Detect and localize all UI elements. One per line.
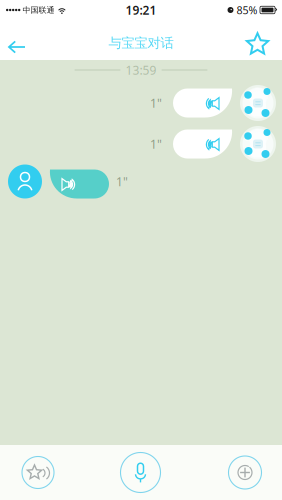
staticText: 13:59 xyxy=(125,62,156,78)
staticText: 1" xyxy=(150,136,162,152)
staticText: 1" xyxy=(116,174,128,189)
button[interactable]: More xyxy=(203,445,282,500)
staticText: 1" xyxy=(150,95,162,111)
button[interactable]: Back xyxy=(0,20,39,59)
button[interactable]: Play voice message xyxy=(0,126,282,162)
staticText: 中国联通 xyxy=(22,5,54,15)
button[interactable]: Favourite xyxy=(233,17,282,63)
button[interactable]: Sound effects xyxy=(0,445,76,500)
button[interactable]: Record voice message xyxy=(76,445,203,500)
staticText: 与宝宝对话 xyxy=(108,35,173,51)
button[interactable]: Play voice message xyxy=(0,85,282,121)
staticText: 85% xyxy=(236,3,257,17)
staticText: 19:21 xyxy=(125,2,156,18)
button[interactable]: Play voice message xyxy=(0,164,282,198)
